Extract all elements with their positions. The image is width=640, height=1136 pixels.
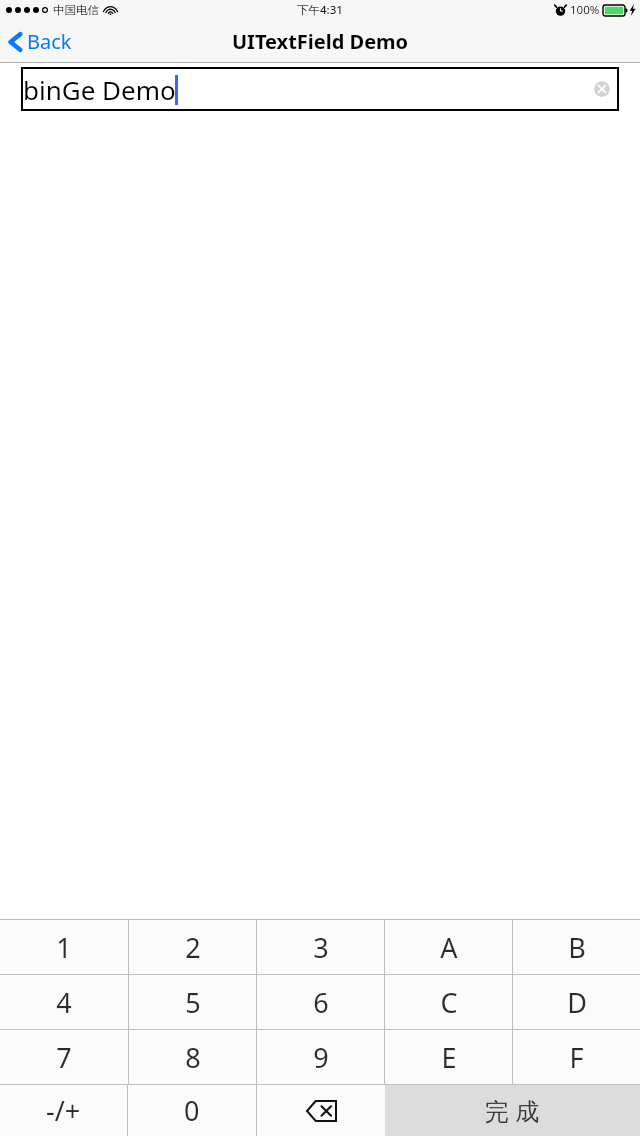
button[interactable]: D	[513, 975, 640, 1029]
staticText: 中国电信	[53, 3, 99, 17]
button[interactable]: 2	[129, 920, 256, 974]
button[interactable]: C	[385, 975, 512, 1029]
staticText: 完 成	[485, 1094, 540, 1127]
staticText: 6	[313, 984, 329, 1021]
staticText: 5	[185, 984, 201, 1021]
button[interactable]: Back	[0, 20, 82, 63]
button[interactable]: -/+	[0, 1085, 127, 1136]
staticText: -/+	[46, 1092, 81, 1129]
staticText: binGe Demo	[23, 72, 176, 107]
staticText: C	[440, 984, 458, 1021]
staticText: Back	[27, 28, 72, 55]
button[interactable]: Backspace	[257, 1085, 385, 1136]
button[interactable]: 5	[129, 975, 256, 1029]
staticText: D	[567, 984, 587, 1021]
button[interactable]: 完 成	[385, 1085, 640, 1136]
staticText: 4	[56, 984, 72, 1021]
button[interactable]: F	[513, 1030, 640, 1084]
button[interactable]: B	[513, 920, 640, 974]
button[interactable]: 4	[0, 975, 128, 1029]
staticText: 1	[56, 929, 72, 966]
staticText: 3	[313, 929, 329, 966]
staticText: 9	[313, 1039, 329, 1076]
staticText: 2	[185, 929, 201, 966]
button[interactable]: binGe Demo	[21, 67, 619, 111]
button[interactable]: 3	[257, 920, 384, 974]
button[interactable]: Clear text	[594, 81, 610, 97]
staticText: 100%	[570, 2, 600, 18]
button[interactable]: 9	[257, 1030, 384, 1084]
button[interactable]: 7	[0, 1030, 128, 1084]
staticText: A	[440, 929, 458, 966]
staticText: F	[569, 1039, 584, 1076]
staticText: 下午4:31	[297, 2, 343, 18]
staticText: B	[568, 929, 586, 966]
staticText: 8	[185, 1039, 201, 1076]
staticText: 0	[184, 1092, 200, 1129]
button[interactable]: 8	[129, 1030, 256, 1084]
button[interactable]: E	[385, 1030, 512, 1084]
button[interactable]: 0	[128, 1085, 256, 1136]
button[interactable]: 6	[257, 975, 384, 1029]
staticText: UITextField Demo	[232, 28, 409, 55]
staticText: 7	[56, 1039, 72, 1076]
staticText: E	[441, 1039, 457, 1076]
button[interactable]: A	[385, 920, 512, 974]
button[interactable]: 1	[0, 920, 128, 974]
